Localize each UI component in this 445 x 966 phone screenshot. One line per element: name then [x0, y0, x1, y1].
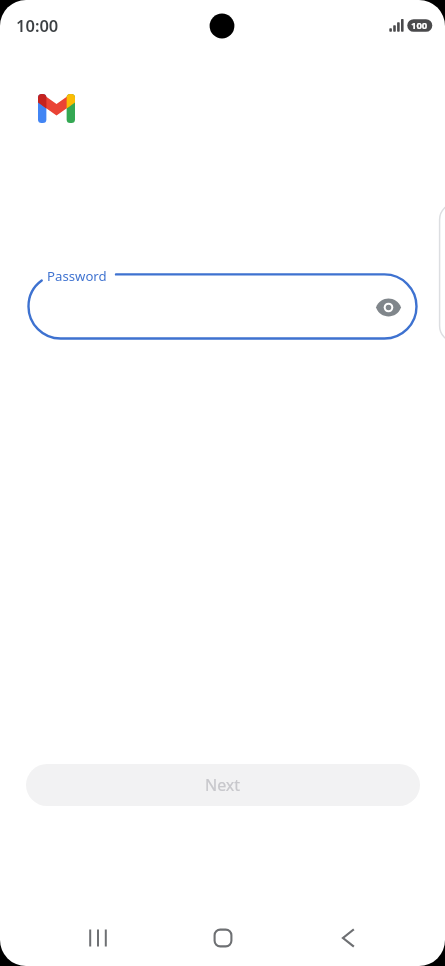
- button[interactable]: Next: [26, 764, 420, 806]
- button[interactable]: Password: [28, 274, 417, 339]
- button[interactable]: Back: [324, 914, 372, 962]
- button[interactable]: Home: [199, 914, 247, 962]
- staticText: Next: [205, 774, 241, 796]
- button[interactable]: Show password: [364, 283, 412, 331]
- staticText: 10:00: [16, 14, 59, 36]
- button[interactable]: Recent apps: [74, 914, 122, 962]
- staticText: 100: [411, 19, 428, 32]
- staticText: Password: [47, 267, 107, 285]
